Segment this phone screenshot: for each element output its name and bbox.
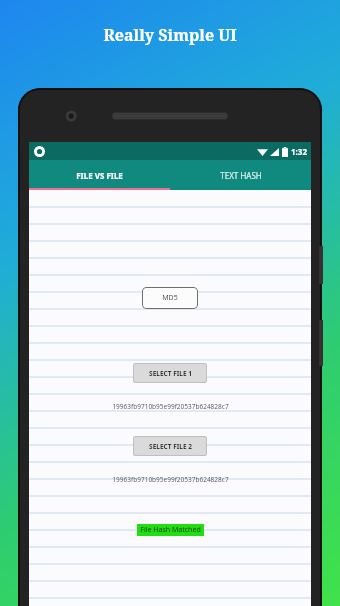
staticText: Really Simple UI bbox=[103, 24, 237, 46]
staticText: SELECT FILE 2 bbox=[149, 442, 192, 451]
staticText: 19963fb9710b95e99f20537b624828c7 bbox=[112, 402, 229, 411]
staticText: File Hash Matched bbox=[140, 525, 201, 535]
staticText: SELECT FILE 1 bbox=[149, 369, 192, 378]
staticText: TEXT HASH bbox=[220, 170, 262, 181]
staticText: MD5 bbox=[162, 293, 178, 303]
staticText: 1:32 bbox=[291, 146, 307, 157]
button[interactable]: SELECT FILE 1 bbox=[133, 363, 207, 383]
button[interactable]: SELECT FILE 2 bbox=[133, 436, 207, 456]
button[interactable]: FILE VS FILE bbox=[29, 160, 170, 190]
button[interactable]: TEXT HASH bbox=[170, 160, 311, 190]
staticText: FILE VS FILE bbox=[76, 170, 123, 181]
button[interactable]: MD5 bbox=[142, 287, 198, 309]
staticText: 19963fb9710b95e99f20537b624828c7 bbox=[112, 475, 229, 484]
